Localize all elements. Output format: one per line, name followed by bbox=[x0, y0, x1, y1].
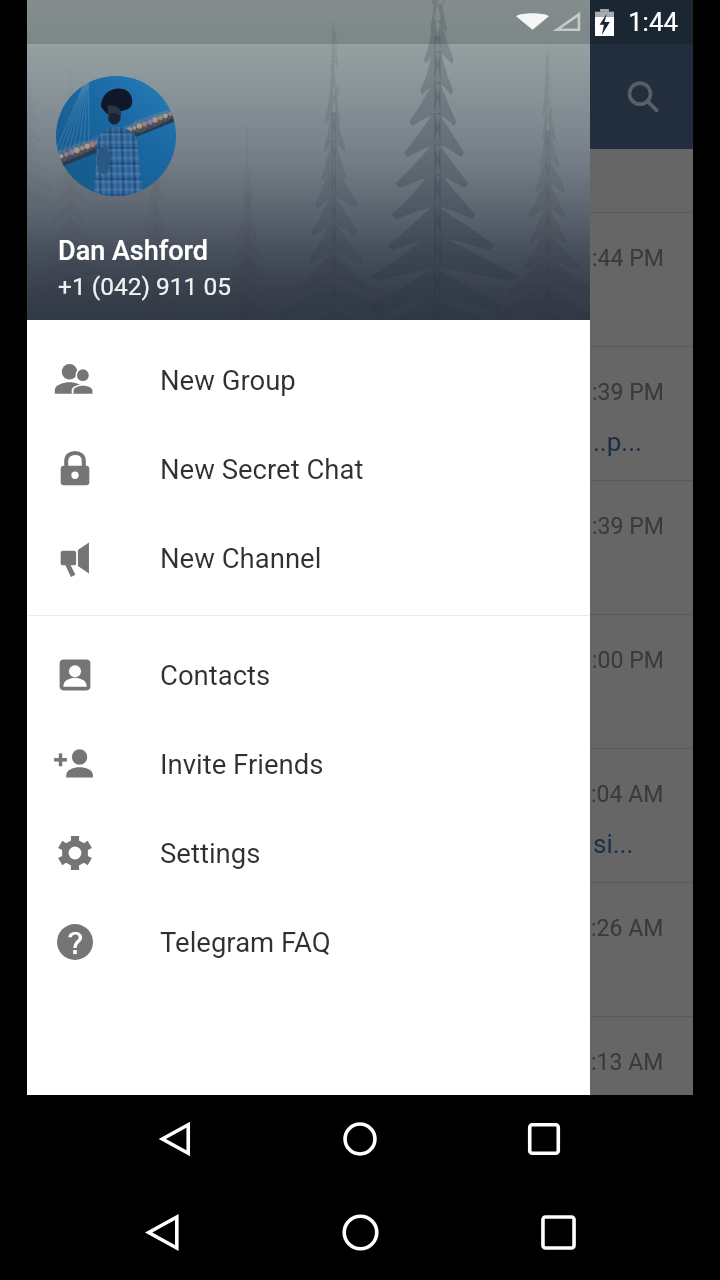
staticText: New Channel bbox=[160, 542, 322, 574]
staticText: +1 (042) 911 05 bbox=[58, 272, 231, 301]
button[interactable]: Profile photo bbox=[56, 76, 176, 196]
staticText: si... bbox=[593, 829, 634, 859]
staticText: New Group bbox=[160, 364, 296, 396]
staticText: Invite Friends bbox=[160, 748, 324, 780]
button[interactable]: Contacts bbox=[27, 630, 590, 719]
staticText: Dan Ashford bbox=[58, 235, 209, 267]
button[interactable]: Search bbox=[615, 69, 671, 125]
button[interactable]: Back bbox=[141, 1104, 211, 1174]
button[interactable]: Back bbox=[128, 1197, 198, 1267]
staticText: New Secret Chat bbox=[160, 453, 364, 485]
button[interactable]: New Group bbox=[27, 335, 590, 424]
staticText: :04 AM bbox=[591, 781, 664, 808]
staticText: :44 PM bbox=[592, 245, 664, 272]
staticText: 1:44 bbox=[628, 7, 679, 37]
button[interactable]: :44 PM bbox=[27, 213, 693, 346]
button[interactable]: Home bbox=[325, 1104, 395, 1174]
staticText: :39 PM bbox=[592, 379, 664, 406]
staticText: :26 AM bbox=[591, 915, 664, 942]
staticText: :39 PM bbox=[592, 513, 664, 540]
button[interactable]: :39 PM bbox=[27, 481, 693, 614]
button[interactable]: New Secret Chat bbox=[27, 424, 590, 513]
staticText: :13 AM bbox=[591, 1049, 664, 1076]
button[interactable]: Recents bbox=[523, 1197, 593, 1267]
button[interactable]: Home bbox=[325, 1197, 395, 1267]
button[interactable]: New Channel bbox=[27, 513, 590, 602]
button[interactable]: Recents bbox=[509, 1104, 579, 1174]
staticText: :00 PM bbox=[592, 647, 664, 674]
button[interactable]: :13 AM bbox=[27, 1017, 693, 1095]
staticText: Contacts bbox=[160, 659, 271, 691]
staticText: Settings bbox=[160, 837, 261, 869]
staticText: Telegram FAQ bbox=[160, 926, 331, 958]
button[interactable]: Telegram FAQ bbox=[27, 897, 590, 986]
button[interactable]: Invite Friends bbox=[27, 719, 590, 808]
staticText: ..p... bbox=[593, 427, 642, 457]
button[interactable]: :00 PM bbox=[27, 615, 693, 748]
button[interactable]: :26 AM bbox=[27, 883, 693, 1016]
button[interactable]: Settings bbox=[27, 808, 590, 897]
button[interactable]: :04 AM bbox=[27, 749, 693, 882]
button[interactable]: :39 PM bbox=[27, 347, 693, 480]
